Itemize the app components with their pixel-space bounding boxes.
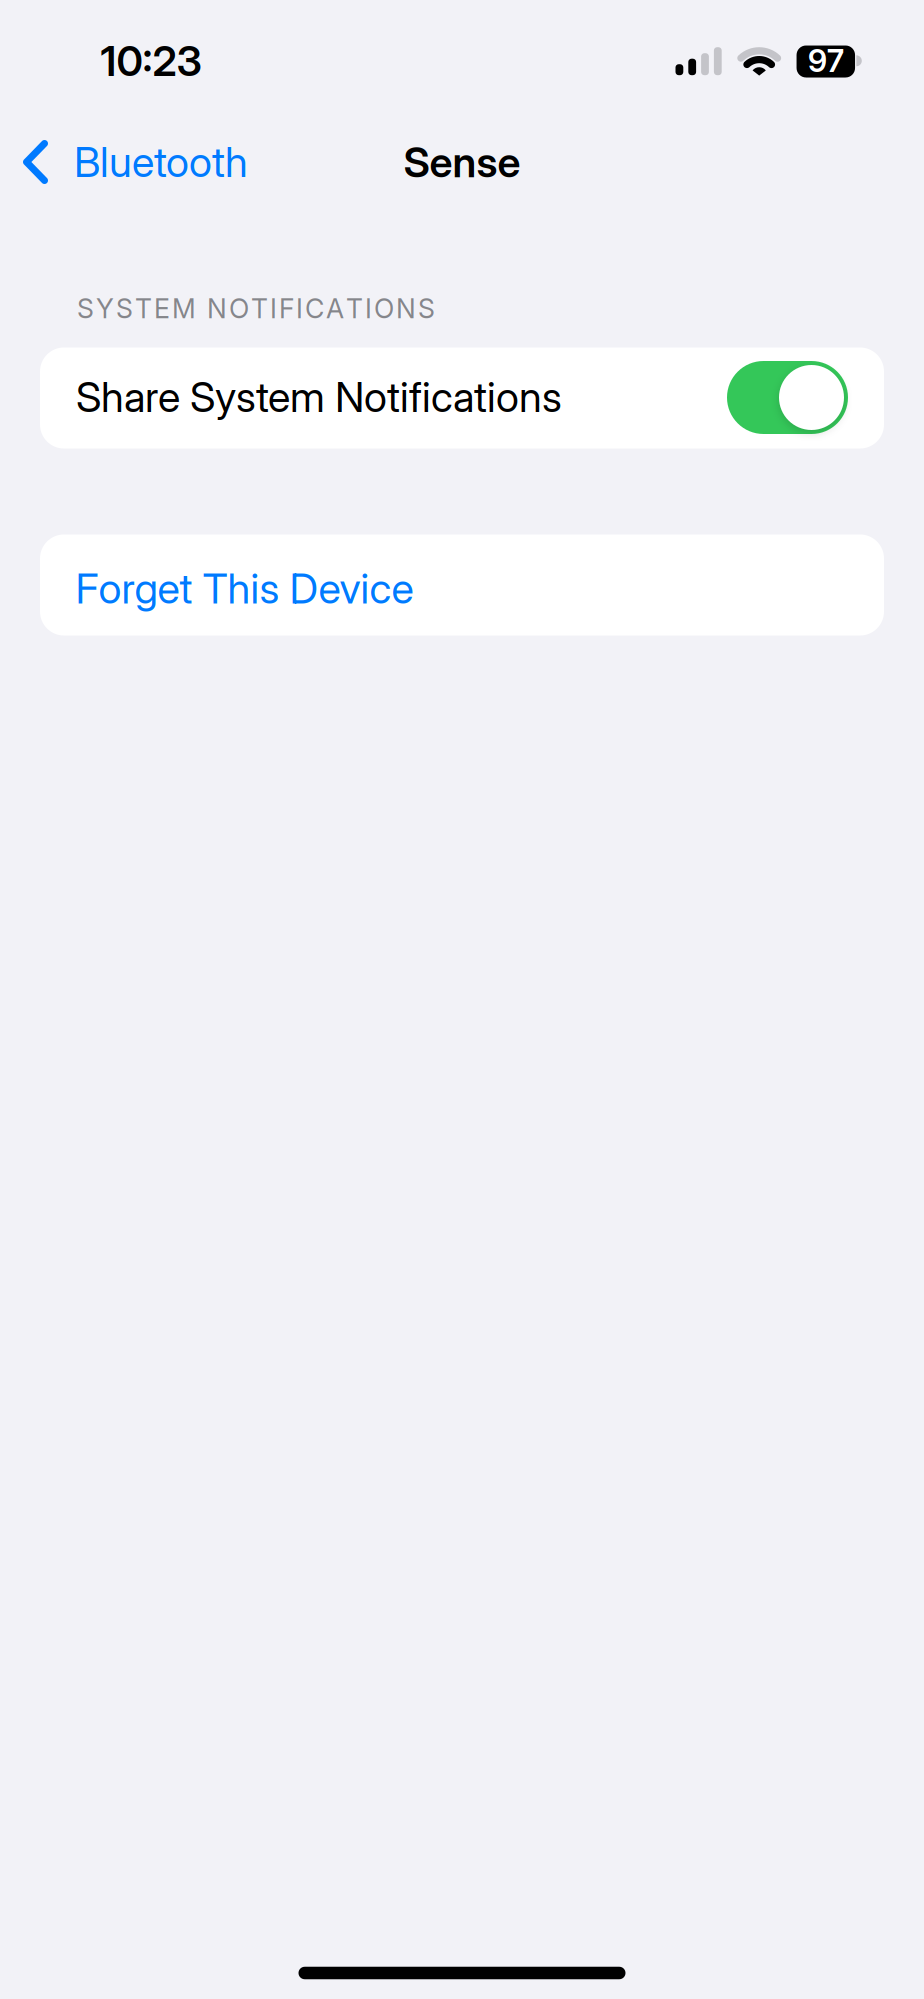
staticText: 10:23 <box>100 36 201 86</box>
button[interactable]: Forget This Device <box>40 534 884 635</box>
staticText: 97 <box>808 42 844 80</box>
staticText: Share System Notifications <box>76 372 562 422</box>
staticText: Sense <box>403 137 520 187</box>
staticText: Forget This Device <box>75 563 413 613</box>
staticText: Bluetooth <box>74 137 248 187</box>
button[interactable]: Share System Notifications <box>727 361 848 434</box>
button[interactable]: Back <box>19 136 248 188</box>
staticText: S Y S T E M N O T I F I C A T I O N S <box>77 292 435 325</box>
